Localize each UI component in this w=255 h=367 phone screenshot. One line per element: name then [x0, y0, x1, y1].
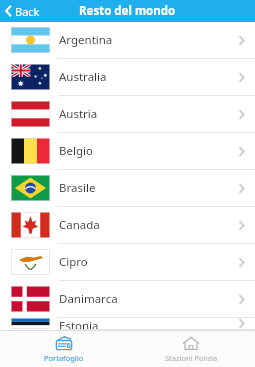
- staticText: Argentina: [59, 32, 238, 48]
- staticText: Portafoglio: [44, 353, 84, 363]
- staticText: Estonia: [59, 318, 238, 329]
- button[interactable]: Cipro: [0, 244, 255, 281]
- button[interactable]: Australia: [0, 59, 255, 96]
- staticText: Stazioni Polizia: [165, 353, 218, 363]
- staticText: Back: [15, 4, 40, 19]
- staticText: Austria: [59, 106, 238, 122]
- button[interactable]: Austria: [0, 96, 255, 133]
- button[interactable]: Estonia: [0, 318, 255, 330]
- staticText: Resto del mondo: [79, 3, 176, 19]
- staticText: Brasile: [59, 180, 238, 196]
- staticText: Danimarca: [59, 291, 238, 307]
- button[interactable]: Canada: [0, 207, 255, 244]
- staticText: Canada: [59, 217, 238, 233]
- staticText: Australia: [59, 69, 238, 85]
- button[interactable]: Portafoglio: [0, 331, 127, 367]
- staticText: Cipro: [59, 254, 238, 270]
- button[interactable]: Back: [0, 0, 50, 22]
- button[interactable]: Stazioni Polizia: [127, 331, 255, 367]
- button[interactable]: Brasile: [0, 170, 255, 207]
- button[interactable]: Argentina: [0, 22, 255, 59]
- button[interactable]: Danimarca: [0, 281, 255, 318]
- staticText: Belgio: [59, 143, 238, 159]
- button[interactable]: Belgio: [0, 133, 255, 170]
